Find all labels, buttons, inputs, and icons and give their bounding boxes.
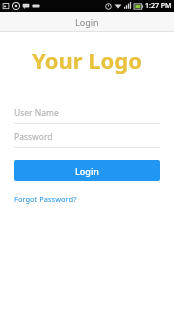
staticText: Forgot Password? [14,194,77,204]
staticText: 1:27 PM [145,1,172,11]
staticText: User Name [14,107,59,119]
button[interactable]: Login [14,160,160,181]
staticText: Login [75,16,99,28]
button[interactable]: Forgot Password? [14,193,77,205]
button[interactable]: Password [14,127,160,148]
button[interactable]: User Name [14,103,160,124]
staticText: Password [14,131,53,143]
staticText: Your Logo [32,45,142,75]
staticText: Login [75,165,99,177]
